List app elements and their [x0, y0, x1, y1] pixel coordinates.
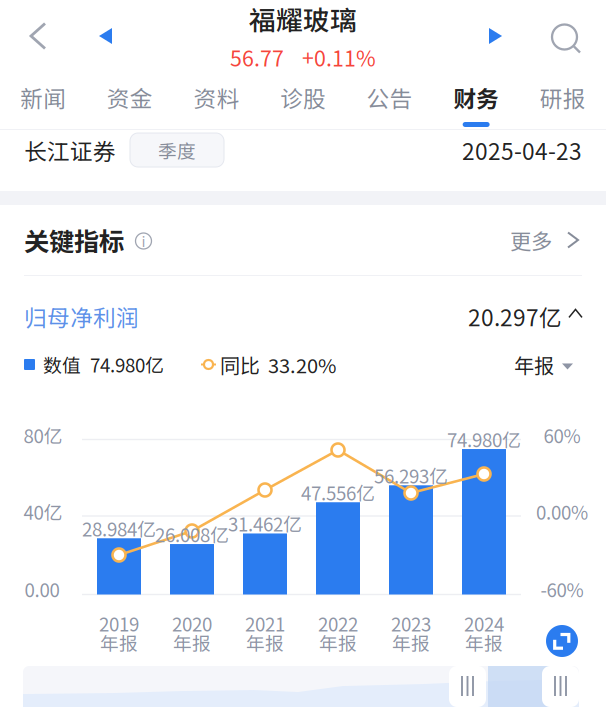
button[interactable]: Range start — [449, 666, 486, 707]
staticText: 财务 — [453, 81, 499, 114]
staticText: 74.980亿 — [90, 351, 164, 378]
staticText: 33.20% — [268, 350, 336, 379]
button[interactable]: Next stock — [471, 12, 519, 60]
button[interactable]: Fullscreen chart — [546, 625, 578, 657]
staticText: 74.980亿 — [447, 425, 521, 452]
button[interactable]: 资料 — [173, 75, 260, 129]
staticText: 2019 — [99, 610, 139, 637]
button[interactable]: 诊股 — [260, 75, 346, 129]
staticText: 年报 — [392, 629, 430, 656]
button[interactable]: 研报 — [519, 75, 606, 129]
staticText: 关键指标 — [24, 222, 124, 258]
staticText: 2021 — [245, 610, 285, 637]
button[interactable]: Search — [540, 13, 592, 65]
button[interactable]: 财务 — [433, 75, 519, 129]
staticText: 0.00 — [24, 575, 59, 602]
staticText: 长江证券 — [24, 134, 116, 166]
button[interactable]: 资金 — [87, 75, 173, 129]
staticText: 归母净利润 — [24, 300, 139, 333]
staticText: i — [141, 230, 145, 251]
staticText: 0.00% — [536, 498, 588, 525]
staticText: 60% — [543, 421, 580, 448]
staticText: 28.984亿 — [82, 515, 156, 542]
staticText: 诊股 — [280, 81, 326, 114]
staticText: 年报 — [246, 629, 284, 656]
staticText: 2020 — [172, 610, 212, 637]
staticText: 公告 — [367, 81, 413, 114]
staticText: 年报 — [319, 629, 357, 656]
staticText: 新闻 — [20, 81, 66, 114]
staticText: 更多 — [510, 225, 552, 255]
button[interactable]: Back — [12, 10, 64, 62]
staticText: 20.297亿 — [468, 300, 562, 333]
button[interactable]: 更多 — [510, 225, 582, 255]
staticText: 2024 — [464, 610, 504, 637]
staticText: 同比 — [220, 350, 260, 379]
staticText: 年报 — [514, 350, 554, 379]
staticText: -60% — [540, 575, 583, 602]
staticText: 研报 — [540, 81, 586, 114]
button[interactable]: Range end — [542, 666, 579, 707]
staticText: +0.11% — [302, 42, 376, 73]
staticText: 40亿 — [23, 498, 62, 525]
button[interactable]: 新闻 — [0, 75, 87, 129]
staticText: 2023 — [391, 610, 431, 637]
staticText: 31.462亿 — [228, 510, 302, 537]
staticText: 56.77 — [230, 42, 284, 73]
staticText: 年报 — [173, 629, 211, 656]
button[interactable]: 公告 — [346, 75, 433, 129]
staticText: 资料 — [193, 81, 239, 114]
staticText: 资金 — [107, 81, 153, 114]
staticText: 2022 — [318, 610, 358, 637]
staticText: 80亿 — [23, 421, 62, 448]
button[interactable]: 年报 — [514, 350, 582, 379]
staticText: 年报 — [100, 629, 138, 656]
staticText: 数值 — [43, 351, 81, 378]
staticText: 年报 — [465, 629, 503, 656]
staticText: 2025-04-23 — [462, 134, 582, 166]
staticText: 56.293亿 — [374, 462, 448, 489]
staticText: 季度 — [158, 136, 196, 163]
staticText: 26.008亿 — [155, 520, 229, 547]
staticText: 47.556亿 — [301, 479, 375, 506]
staticText: 福耀玻璃 — [249, 0, 357, 38]
button[interactable]: 季度 — [130, 133, 224, 167]
button[interactable]: Previous stock — [81, 12, 129, 60]
